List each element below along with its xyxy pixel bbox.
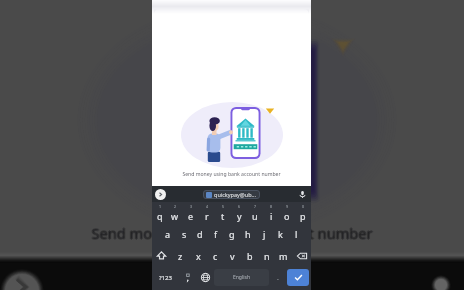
button[interactable]: z (171, 245, 189, 266)
button[interactable]: s (176, 223, 192, 245)
button[interactable]: Backspace (292, 245, 311, 266)
button[interactable]: g (224, 223, 240, 245)
button[interactable]: 5 (215, 202, 231, 223)
button[interactable]: d (192, 223, 208, 245)
staticText: x (196, 250, 201, 262)
staticText: 0 (302, 204, 305, 209)
button[interactable]: v (224, 245, 241, 266)
button[interactable]: c (207, 245, 224, 266)
staticText: g (229, 228, 235, 240)
button[interactable]: l (288, 223, 304, 245)
button[interactable]: 6 (231, 202, 247, 223)
staticText: Send money using bank account number (0, 224, 464, 244)
staticText: English (233, 274, 251, 281)
button[interactable]: Voice input (297, 189, 308, 200)
staticText: . (277, 273, 279, 283)
button[interactable]: f (208, 223, 224, 245)
staticText: Send money using bank account number (0, 223, 464, 243)
button[interactable]: 0 (295, 202, 311, 223)
staticText: 9 (286, 204, 289, 209)
button[interactable]: 3 (183, 202, 199, 223)
staticText: m (279, 250, 288, 262)
staticText: 4 (206, 204, 209, 209)
staticText: p (300, 210, 306, 222)
button[interactable]: English (214, 269, 269, 286)
button[interactable]: 7 (247, 202, 263, 223)
button[interactable]: Comma (179, 269, 196, 286)
staticText: a (165, 228, 171, 240)
staticText: s (182, 228, 187, 240)
button[interactable]: Shift (152, 245, 171, 266)
button[interactable]: Period (269, 269, 287, 286)
button[interactable]: k (272, 223, 288, 245)
staticText: z (178, 250, 183, 262)
staticText: c (213, 250, 218, 262)
staticText: l (295, 228, 298, 240)
staticText: Send money using bank account number (152, 171, 311, 178)
button[interactable]: b (241, 245, 258, 266)
staticText: quickypay@ub... (214, 191, 257, 198)
staticText: n (264, 250, 270, 262)
button[interactable]: 1 (152, 202, 167, 223)
staticText: o (284, 210, 290, 222)
button[interactable]: m (275, 245, 292, 266)
staticText: h (245, 228, 251, 240)
staticText: 7 (254, 204, 257, 209)
button[interactable]: quickypay@ub... (206, 191, 257, 198)
staticText: b (247, 250, 253, 262)
button[interactable]: Enter (287, 269, 309, 286)
staticText: k (278, 228, 283, 240)
staticText: w (171, 210, 179, 222)
staticText: 5 (222, 204, 225, 209)
button[interactable]: 9 (279, 202, 295, 223)
staticText: Send money using bank account number (0, 222, 464, 242)
button[interactable]: h (240, 223, 256, 245)
button[interactable]: ?123 (152, 269, 179, 286)
staticText: 6 (238, 204, 241, 209)
staticText: ?123 (159, 274, 172, 282)
button[interactable]: n (258, 245, 275, 266)
button[interactable]: j (256, 223, 272, 245)
button[interactable]: Expand suggestions (155, 189, 166, 200)
staticText: r (205, 210, 209, 222)
staticText: Send money using bank account number (0, 223, 463, 243)
button[interactable]: a (159, 223, 176, 245)
staticText: f (214, 228, 218, 240)
staticText: e (188, 210, 194, 222)
staticText: 3 (190, 204, 193, 209)
staticText: v (230, 250, 235, 262)
button[interactable]: 8 (263, 202, 279, 223)
staticText: q (157, 210, 163, 222)
button[interactable]: 2 (167, 202, 183, 223)
staticText: 8 (270, 204, 273, 209)
staticText: i (270, 210, 273, 222)
staticText: t (221, 210, 225, 222)
staticText: u (252, 210, 258, 222)
staticText: d (197, 228, 203, 240)
staticText: y (237, 210, 242, 222)
button[interactable]: 4 (199, 202, 215, 223)
staticText: j (263, 228, 266, 240)
button[interactable]: x (189, 245, 207, 266)
button[interactable]: Switch language (196, 269, 214, 286)
staticText: Send money using bank account number (1, 223, 464, 243)
staticText: 2 (174, 204, 177, 209)
staticText: 1 (159, 204, 162, 209)
